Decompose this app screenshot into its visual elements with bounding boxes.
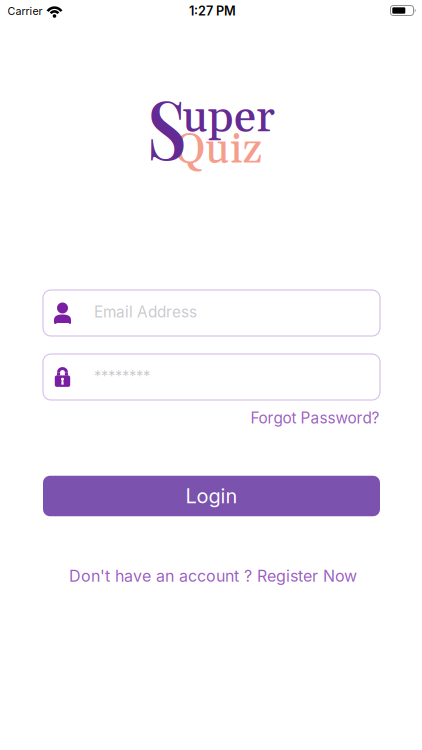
staticText: Don't have an account ? Register Now <box>69 566 357 586</box>
button[interactable]: ******** <box>43 354 380 400</box>
staticText: Carrier <box>7 4 42 17</box>
staticText: Forgot Password? <box>250 409 379 427</box>
button[interactable]: Don't have an account ? Register Now <box>69 566 357 586</box>
staticText: uper <box>182 90 275 146</box>
button[interactable]: Email Address <box>43 290 380 336</box>
button[interactable]: Login <box>43 476 380 516</box>
staticText: Quiz <box>174 124 262 177</box>
button[interactable]: Forgot Password? <box>250 409 379 427</box>
staticText: ******** <box>94 367 150 385</box>
staticText: Email Address <box>94 303 197 321</box>
staticText: Login <box>185 484 237 508</box>
staticText: S <box>144 73 190 180</box>
staticText: 1:27 PM <box>189 3 236 19</box>
